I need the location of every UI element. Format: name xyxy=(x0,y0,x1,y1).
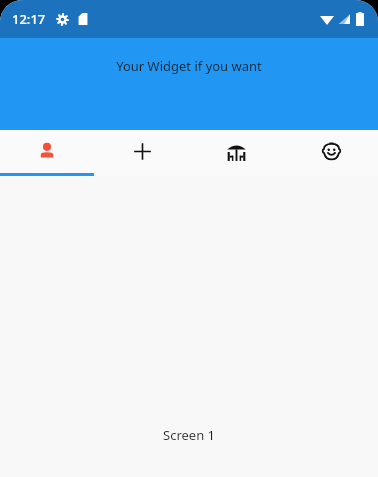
staticText: Screen 1 xyxy=(163,426,216,444)
button[interactable]: Account xyxy=(0,130,94,176)
staticText: 12:17 xyxy=(12,10,46,28)
button[interactable]: Child xyxy=(284,130,378,176)
button[interactable]: Add xyxy=(95,130,189,176)
button[interactable]: Deck xyxy=(189,130,283,176)
staticText: Your Widget if you want xyxy=(116,57,262,75)
